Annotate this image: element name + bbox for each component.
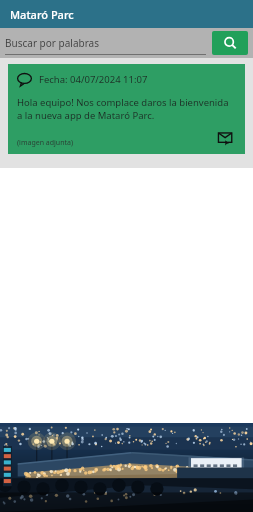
button[interactable]: Mataró Parc <box>0 0 253 28</box>
staticText: (imagen adjunta) <box>17 138 74 148</box>
staticText: Hola equipo! Nos complace daros la bienv… <box>17 96 236 122</box>
button[interactable]: Buscar por palabras <box>5 31 206 55</box>
button[interactable]: Fecha: 04/07/2024 11:07 <box>8 64 245 154</box>
staticText: Buscar por palabras <box>5 36 99 50</box>
staticText: Mataró Parc <box>10 7 74 22</box>
button[interactable] <box>0 423 253 512</box>
staticText: Fecha: 04/07/2024 11:07 <box>39 73 148 86</box>
button[interactable]: Adjunto <box>216 128 236 148</box>
button[interactable]: Buscar <box>212 31 248 55</box>
